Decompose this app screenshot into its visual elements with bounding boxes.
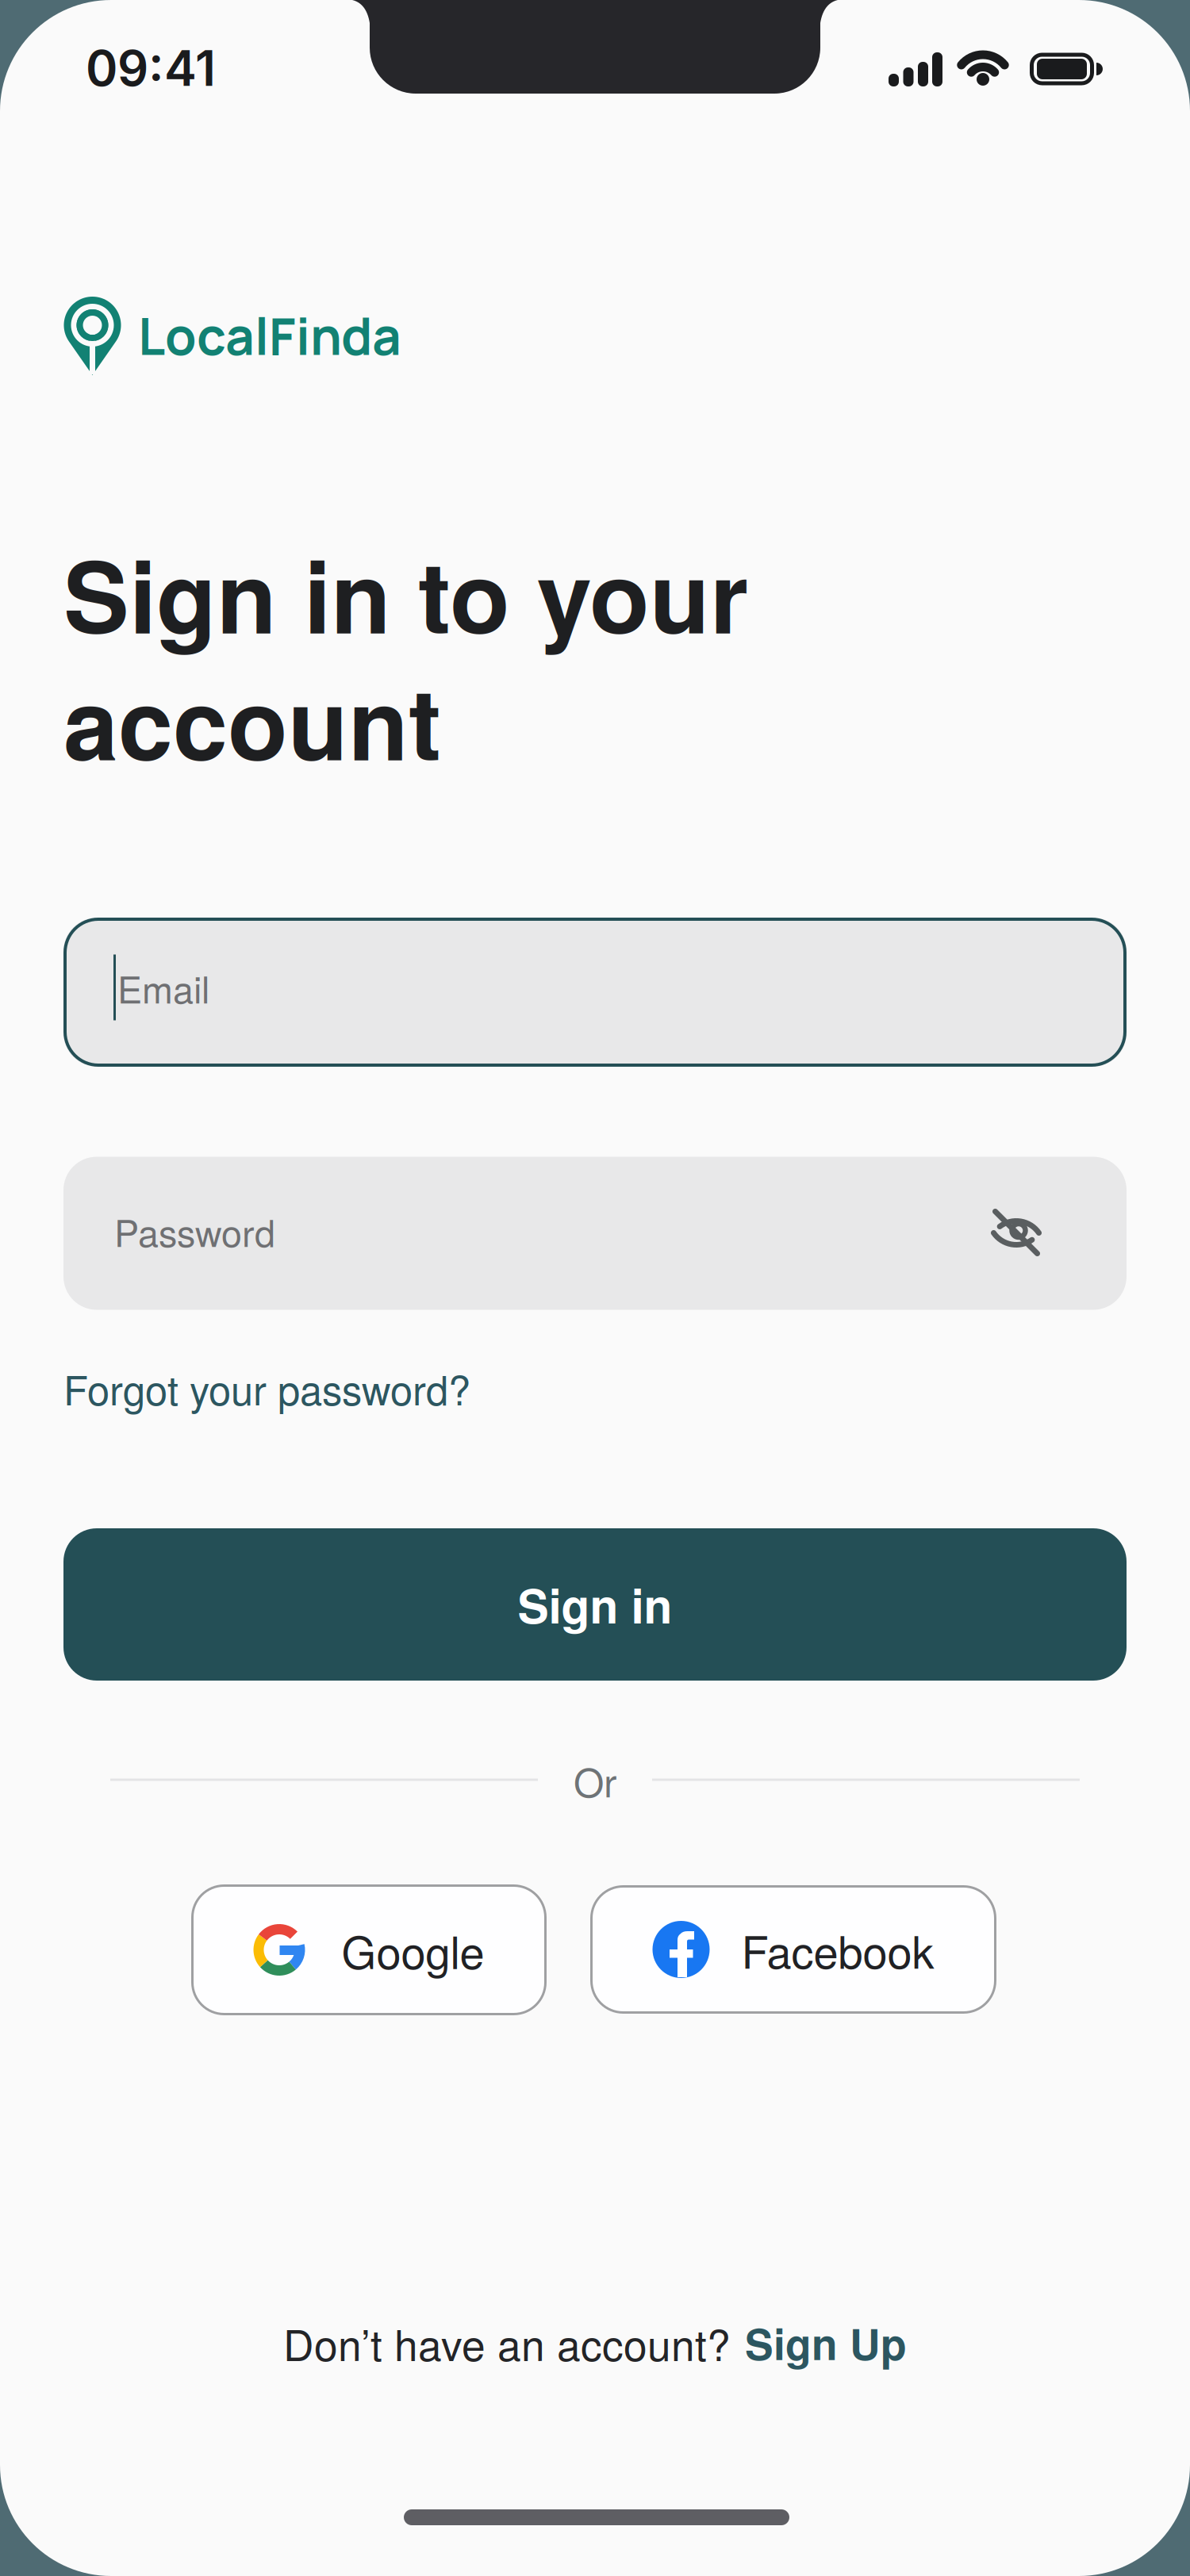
staticText: 09:41 (86, 39, 216, 98)
staticText: Forgot your password? (63, 1359, 470, 1417)
staticText: Sign in (518, 1571, 672, 1638)
button[interactable]: Sign in (63, 1528, 1127, 1681)
staticText: account (63, 650, 441, 791)
button[interactable]: Facebook (590, 1885, 996, 2014)
staticText: Or (574, 1753, 616, 1809)
staticText: Google (342, 1918, 484, 1982)
button[interactable]: Google (191, 1884, 547, 2015)
button[interactable]: Sign Up (745, 2313, 907, 2373)
button[interactable]: Password (63, 1157, 1127, 1310)
button[interactable]: Email (63, 918, 1127, 1067)
staticText: Sign Up (745, 2313, 907, 2373)
staticText: LocalFinda (138, 301, 401, 370)
staticText: Email (117, 961, 209, 1014)
staticText: Password (114, 1204, 275, 1257)
staticText: Facebook (741, 1918, 934, 1981)
button[interactable]: Show password (63, 1157, 1127, 1310)
button[interactable]: Forgot your password? (63, 1359, 470, 1417)
staticText: Don’t have an account? (283, 2313, 731, 2373)
staticText: Sign in to your (63, 523, 748, 664)
